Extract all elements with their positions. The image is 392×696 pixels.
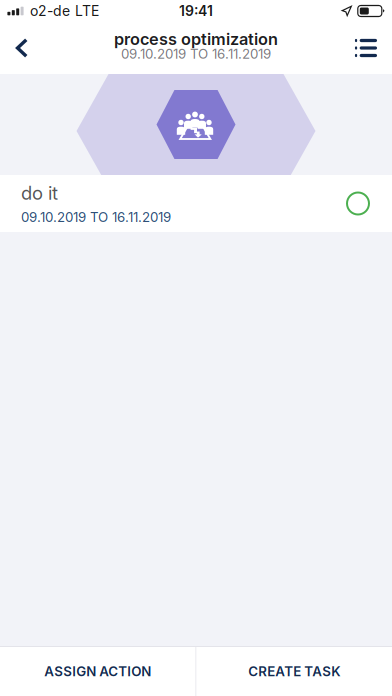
- staticText: process optimization: [114, 29, 278, 49]
- staticText: LTE: [75, 2, 99, 19]
- staticText: 09.10.2019 TO 16.11.2019: [21, 209, 171, 225]
- button[interactable]: Back: [0, 22, 44, 74]
- staticText: do it: [21, 182, 58, 204]
- staticText: 09.10.2019 TO 16.11.2019: [121, 46, 271, 62]
- staticText: ASSIGN ACTION: [44, 663, 151, 679]
- button[interactable]: CREATE TASK: [196, 647, 392, 696]
- staticText: CREATE TASK: [248, 663, 340, 679]
- button[interactable]: Menu: [344, 22, 388, 74]
- staticText: 19:41: [179, 2, 213, 19]
- button[interactable]: do it: [0, 175, 392, 232]
- staticText: o2-de: [30, 2, 70, 19]
- button[interactable]: ASSIGN ACTION: [0, 647, 195, 696]
